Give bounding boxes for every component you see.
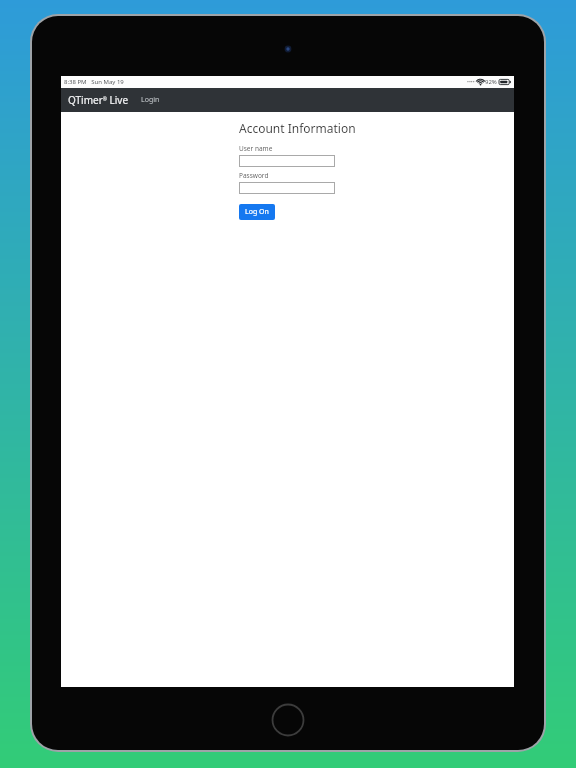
other: Wi-Fi [477,79,484,86]
staticText: •••• [467,79,475,86]
staticText: Account Information [239,120,356,136]
staticText: Log On [245,207,269,217]
button[interactable] [239,182,335,194]
staticText: Password [239,171,269,180]
staticText: 92% [485,78,497,86]
button[interactable]: Log On [239,204,275,220]
staticText: QTimer® Live [68,93,129,107]
button[interactable]: Login [136,89,168,111]
staticText: Login [141,95,160,105]
button[interactable]: QTimer® Live [61,88,136,112]
staticText: User name [239,144,273,153]
staticText: 8:38 PM Sun May 19 [64,78,124,86]
button[interactable] [239,155,335,167]
other: Battery 92 percent [499,79,511,85]
